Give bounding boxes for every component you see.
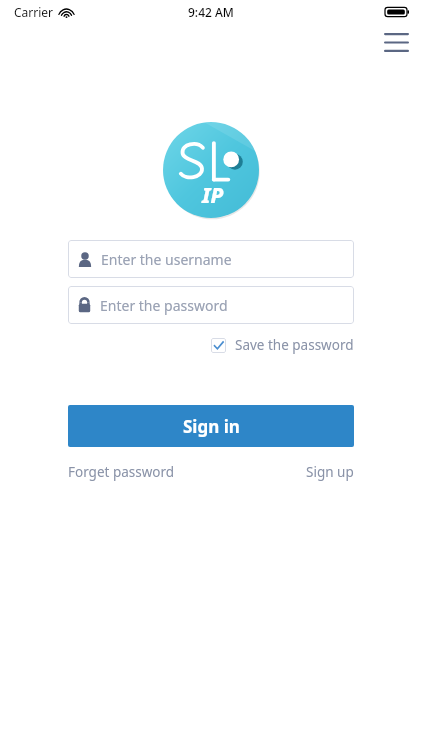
button[interactable]: Sign in xyxy=(68,405,354,447)
button[interactable]: Save the password xyxy=(211,333,354,357)
staticText: Forget password xyxy=(68,463,175,481)
staticText: Save the password xyxy=(235,336,354,354)
staticText: 9:42 AM xyxy=(188,4,234,20)
staticText: Enter the password xyxy=(100,296,228,315)
staticText: IP xyxy=(202,181,224,210)
button[interactable]: Menu xyxy=(378,24,414,60)
staticText: Sign in xyxy=(183,415,240,438)
button[interactable]: Sign up xyxy=(306,459,354,485)
button[interactable]: Enter the username xyxy=(68,240,354,278)
button[interactable]: Enter the password xyxy=(68,286,354,324)
staticText: Carrier xyxy=(14,4,54,20)
staticText: Enter the username xyxy=(101,250,232,269)
button[interactable]: Forget password xyxy=(68,459,175,485)
staticText: Sign up xyxy=(306,463,354,481)
